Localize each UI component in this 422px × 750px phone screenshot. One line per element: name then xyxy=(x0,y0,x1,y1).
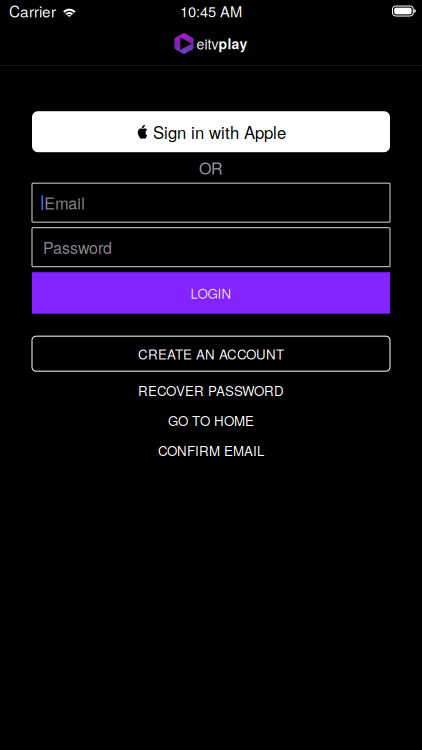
button[interactable]: RECOVER PASSWORD xyxy=(32,375,390,405)
staticText: Password xyxy=(43,236,112,259)
staticText: CREATE AN ACCOUNT xyxy=(138,344,284,363)
staticText: GO TO HOME xyxy=(168,411,254,430)
staticText: Sign in with Apple xyxy=(153,120,286,144)
button[interactable]: Sign in with Apple xyxy=(32,111,390,152)
staticText: eitv xyxy=(196,33,218,53)
staticText: RECOVER PASSWORD xyxy=(138,381,284,400)
staticText: play xyxy=(218,33,247,53)
staticText: Carrier xyxy=(9,0,56,22)
button[interactable]: CONFIRM EMAIL xyxy=(32,435,390,465)
button[interactable]: LOGIN xyxy=(32,272,390,314)
staticText: 10:45 AM xyxy=(180,0,242,21)
staticText: Email xyxy=(44,191,85,214)
staticText: CONFIRM EMAIL xyxy=(158,441,264,460)
staticText: LOGIN xyxy=(190,283,231,302)
button[interactable]: GO TO HOME xyxy=(32,405,390,435)
staticText: OR xyxy=(199,156,223,179)
button[interactable]: CREATE AN ACCOUNT xyxy=(32,336,390,371)
